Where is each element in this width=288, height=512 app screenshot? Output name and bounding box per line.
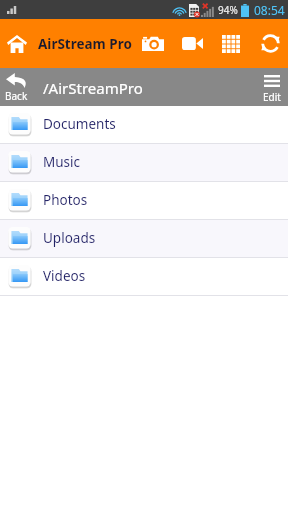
- button[interactable]: Refresh: [251, 19, 288, 68]
- staticText: Photos: [43, 191, 88, 209]
- button[interactable]: Documents: [0, 106, 288, 143]
- staticText: 08:54: [254, 2, 285, 18]
- button[interactable]: Video: [173, 19, 212, 68]
- button[interactable]: Uploads: [0, 220, 288, 257]
- staticText: Videos: [43, 267, 86, 285]
- button[interactable]: Grid view: [211, 19, 250, 68]
- button[interactable]: Back: [0, 68, 33, 106]
- button[interactable]: Camera: [133, 19, 172, 68]
- button[interactable]: Videos: [0, 258, 288, 295]
- staticText: Back: [5, 89, 28, 103]
- button[interactable]: Music: [0, 144, 288, 181]
- staticText: 94%: [218, 3, 238, 17]
- button[interactable]: Edit: [256, 68, 288, 106]
- staticText: Music: [43, 153, 81, 171]
- staticText: Edit: [263, 90, 281, 104]
- button[interactable]: Home: [1, 19, 33, 68]
- staticText: Documents: [43, 115, 116, 133]
- staticText: /AirStreamPro: [43, 78, 143, 98]
- staticText: AirStream Pro: [38, 35, 132, 53]
- button[interactable]: Photos: [0, 182, 288, 219]
- staticText: Uploads: [43, 229, 96, 247]
